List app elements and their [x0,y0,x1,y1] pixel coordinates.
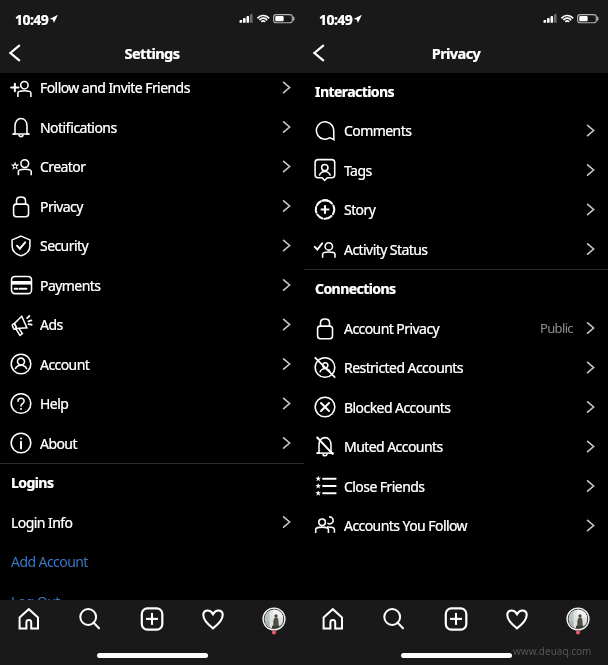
staticText: Ads [40,315,63,334]
button[interactable]: Payments [0,265,304,305]
button[interactable]: Close Friends [304,466,608,506]
staticText: Comments [344,121,412,140]
staticText: Accounts You Follow [344,516,468,535]
staticText: Restricted Accounts [344,358,463,377]
button[interactable]: Activity Status [304,229,608,269]
button[interactable]: Security [0,226,304,265]
button[interactable]: Ads [0,305,304,344]
button[interactable]: Search [364,600,425,638]
button[interactable]: Log Out [0,581,304,621]
staticText: Interactions [315,82,394,101]
staticText: www.deuaq.com [513,644,592,658]
button[interactable]: Home [304,600,364,638]
staticText: Activity Status [344,240,428,259]
button[interactable]: Follow and Invite Friends [0,68,304,107]
staticText: Logins [11,473,54,492]
button[interactable]: Comments [304,111,608,150]
staticText: Add Account [11,552,88,571]
button[interactable]: Interactions [304,71,608,111]
staticText: Story [344,200,376,219]
button[interactable]: Activity [486,600,547,638]
staticText: Follow and Invite Friends [40,78,190,97]
staticText: Settings [0,43,304,63]
button[interactable]: Account [0,344,304,384]
staticText: Close Friends [344,477,425,496]
button[interactable]: Activity [182,600,243,638]
button[interactable]: Notifications [0,107,304,147]
staticText: Notifications [40,118,117,137]
staticText: Log Out [11,592,60,611]
staticText: Login Info [11,513,73,532]
staticText: Creator [40,157,86,176]
staticText: 10:49 [319,10,353,29]
button[interactable]: Story [304,190,608,229]
button[interactable]: Tags [304,150,608,190]
button[interactable]: Create new post [121,600,182,638]
staticText: Payments [40,276,101,295]
button[interactable]: Privacy [0,186,304,226]
button[interactable]: Creator [0,147,304,186]
button[interactable]: Logins [0,463,304,502]
button[interactable]: Profile [547,600,608,638]
button[interactable]: About [0,423,304,463]
button[interactable]: Back [304,38,344,73]
staticText: About [40,434,77,453]
button[interactable]: Profile [243,600,304,638]
staticText: Account [40,355,90,374]
button[interactable]: Help [0,384,304,423]
staticText: Connections [315,279,396,298]
button[interactable]: Back [0,38,40,73]
button[interactable]: Muted Accounts [304,427,608,466]
button[interactable]: Create new post [425,600,486,638]
button[interactable]: Login Info [0,502,304,542]
button[interactable]: Account Privacy [304,308,608,348]
staticText: Help [40,394,69,413]
staticText: Account Privacy [344,319,440,338]
button[interactable]: Home [0,600,60,638]
staticText: Security [40,236,89,255]
staticText: Privacy [304,43,608,63]
staticText: Blocked Accounts [344,398,451,417]
staticText: Muted Accounts [344,437,443,456]
staticText: Privacy [40,197,83,216]
button[interactable]: Accounts You Follow [304,506,608,545]
button[interactable]: Search [60,600,121,638]
staticText: Tags [344,161,372,180]
staticText: Public [540,319,573,337]
button[interactable]: Connections [304,269,608,308]
button[interactable]: Blocked Accounts [304,387,608,427]
button[interactable]: Restricted Accounts [304,348,608,387]
staticText: 10:49 [15,10,49,29]
button[interactable]: Add Account [0,542,304,581]
